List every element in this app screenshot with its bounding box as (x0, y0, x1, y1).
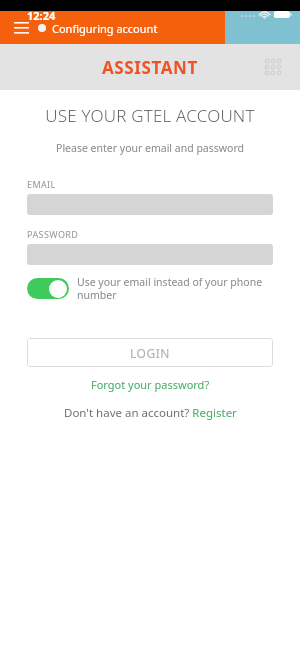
button[interactable]: Open navigation menu (7, 17, 35, 39)
button[interactable]: Forgot your password? (27, 377, 273, 392)
staticText: USE YOUR GTEL ACCOUNT (27, 104, 273, 127)
staticText: EMAIL (27, 178, 56, 190)
staticText: Use your email instead of your phone num… (77, 275, 273, 302)
button[interactable]: Don't have an account? Register (27, 405, 273, 421)
button[interactable]: Use your email instead of your phone num… (27, 275, 273, 302)
staticText: ASSISTANT (102, 56, 198, 79)
staticText: Please enter your email and password (27, 141, 273, 155)
button[interactable]: LOGIN (27, 338, 273, 367)
staticText: 12:24 (27, 8, 56, 23)
staticText: Forgot your password? (91, 377, 210, 392)
staticText: PASSWORD (27, 228, 79, 240)
button[interactable]: Apps grid (260, 54, 286, 80)
staticText: LOGIN (130, 345, 170, 361)
staticText: Don't have an account? Register (64, 405, 237, 421)
staticText: Configuring account (52, 21, 158, 36)
